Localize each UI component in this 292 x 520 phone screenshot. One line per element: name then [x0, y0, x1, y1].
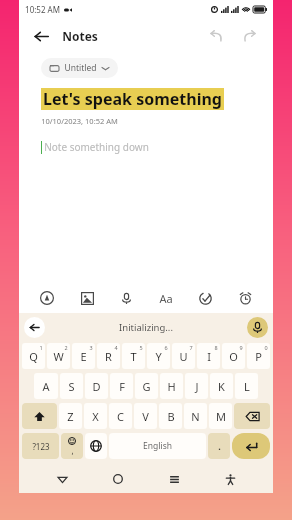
staticText: 0: [264, 344, 268, 351]
button[interactable]: U: [172, 343, 195, 369]
button[interactable]: Z: [59, 403, 82, 429]
button[interactable]: O: [222, 343, 245, 369]
button[interactable]: T: [122, 343, 145, 369]
staticText: A: [42, 379, 50, 394]
button[interactable]: E: [72, 343, 95, 369]
staticText: Q: [29, 349, 38, 364]
staticText: C: [117, 409, 124, 424]
button[interactable]: R: [97, 343, 120, 369]
staticText: Y: [155, 349, 162, 364]
staticText: Aa: [159, 291, 173, 306]
staticText: U: [179, 349, 188, 364]
staticText: W: [53, 349, 64, 364]
button[interactable]: Undo: [203, 23, 229, 49]
button[interactable]: G: [135, 373, 158, 399]
button[interactable]: Shift: [22, 403, 57, 429]
staticText: Untitled: [64, 62, 97, 74]
button[interactable]: Checklist: [191, 284, 219, 312]
staticText: 5: [139, 344, 143, 351]
staticText: 6: [164, 344, 168, 351]
staticText: Let's speak something: [43, 88, 222, 110]
button[interactable]: V: [134, 403, 157, 429]
staticText: Notes: [62, 28, 98, 44]
staticText: Note something down: [44, 140, 149, 154]
staticText: E: [80, 349, 87, 364]
staticText: G: [142, 379, 151, 394]
staticText: 8: [214, 344, 218, 351]
button[interactable]: Text format: [152, 284, 180, 312]
button[interactable]: Back: [49, 466, 75, 492]
staticText: S: [68, 379, 75, 394]
button[interactable]: W: [47, 343, 70, 369]
button[interactable]: Voice: [112, 284, 140, 312]
button[interactable]: Recent apps: [161, 466, 187, 492]
button[interactable]: C: [109, 403, 132, 429]
button[interactable]: Close toolbar: [24, 317, 45, 338]
button[interactable]: M: [209, 403, 232, 429]
staticText: T: [130, 349, 137, 364]
staticText: D: [92, 379, 101, 394]
button[interactable]: Home: [105, 466, 131, 492]
staticText: K: [218, 379, 225, 394]
button[interactable]: H: [160, 373, 183, 399]
button[interactable]: Space: [109, 433, 206, 459]
button[interactable]: Image: [73, 284, 101, 312]
staticText: M: [216, 409, 226, 424]
staticText: .: [218, 440, 221, 452]
staticText: P: [255, 349, 262, 364]
button[interactable]: Period: [208, 433, 230, 459]
staticText: X: [92, 409, 99, 424]
staticText: B: [167, 409, 175, 424]
button[interactable]: F: [110, 373, 133, 399]
staticText: 2: [64, 344, 68, 351]
staticText: I: [207, 349, 211, 364]
staticText: 10/10/2023, 10:52 AM: [41, 116, 118, 126]
staticText: Z: [67, 409, 74, 424]
button[interactable]: Accessibility: [217, 466, 243, 492]
button[interactable]: Back: [29, 24, 53, 48]
button[interactable]: Untitled: [41, 58, 118, 78]
button[interactable]: J: [185, 373, 208, 399]
staticText: 7: [189, 344, 193, 351]
button[interactable]: Enter: [232, 433, 270, 459]
staticText: V: [142, 409, 149, 424]
button[interactable]: Change language: [85, 433, 107, 459]
button[interactable]: D: [85, 373, 108, 399]
button[interactable]: Y: [147, 343, 170, 369]
button[interactable]: Draw: [33, 284, 61, 312]
staticText: R: [105, 349, 112, 364]
button[interactable]: I: [197, 343, 220, 369]
button[interactable]: B: [159, 403, 182, 429]
staticText: F: [119, 379, 125, 394]
button[interactable]: K: [210, 373, 233, 399]
button[interactable]: Q: [22, 343, 45, 369]
button[interactable]: N: [184, 403, 207, 429]
staticText: Initializing...: [119, 321, 173, 334]
button[interactable]: X: [84, 403, 107, 429]
button[interactable]: A: [34, 373, 58, 399]
staticText: ,: [71, 445, 74, 456]
staticText: 9: [239, 344, 243, 351]
staticText: 4: [114, 344, 118, 351]
staticText: 1: [39, 344, 43, 351]
staticText: O: [229, 349, 238, 364]
staticText: N: [191, 409, 200, 424]
button[interactable]: Redo: [237, 23, 263, 49]
staticText: H: [167, 379, 176, 394]
staticText: L: [244, 379, 250, 394]
button[interactable]: Reminder: [231, 284, 259, 312]
button[interactable]: Voice input: [247, 317, 268, 338]
staticText: 3: [89, 344, 93, 351]
staticText: J: [195, 379, 199, 394]
staticText: 10:52 AM: [25, 4, 60, 15]
button[interactable]: S: [60, 373, 83, 399]
staticText: ?123: [32, 441, 50, 452]
button[interactable]: Emoji and comma: [61, 433, 83, 459]
button[interactable]: Backspace: [234, 403, 270, 429]
button[interactable]: Symbols: [22, 433, 59, 459]
staticText: English: [143, 440, 172, 452]
button[interactable]: L: [235, 373, 258, 399]
button[interactable]: P: [247, 343, 270, 369]
